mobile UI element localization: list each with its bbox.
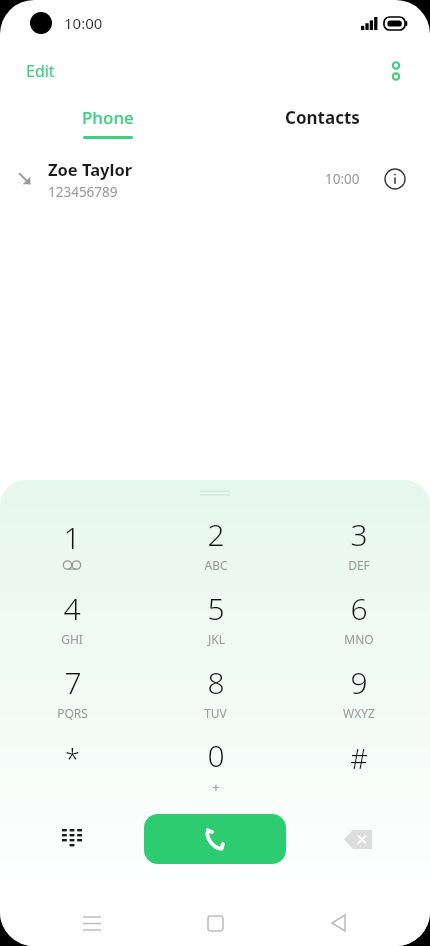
button[interactable]: 2 bbox=[144, 506, 287, 580]
button[interactable]: 1 bbox=[0, 506, 144, 580]
staticText: 8 bbox=[207, 662, 225, 703]
staticText: 2 bbox=[207, 514, 225, 555]
button[interactable]: 5 bbox=[144, 580, 287, 654]
staticText: 5 bbox=[207, 588, 225, 629]
button[interactable]: 7 bbox=[0, 654, 144, 728]
button[interactable]: Edit bbox=[14, 54, 67, 88]
button[interactable]: # bbox=[287, 728, 430, 802]
button[interactable]: Phone bbox=[0, 96, 215, 148]
staticText: 6 bbox=[350, 588, 368, 629]
button[interactable]: 9 bbox=[287, 654, 430, 728]
staticText: 4 bbox=[63, 588, 81, 629]
staticText: 10:00 bbox=[325, 170, 360, 188]
staticText: 9 bbox=[350, 662, 368, 703]
staticText: * bbox=[65, 740, 80, 777]
staticText: DEF bbox=[348, 557, 370, 573]
button[interactable]: Contacts bbox=[215, 96, 430, 148]
staticText: WXYZ bbox=[343, 705, 375, 721]
staticText: # bbox=[350, 740, 368, 777]
button[interactable]: 8 bbox=[144, 654, 287, 728]
button[interactable]: Zoe Taylor bbox=[0, 148, 430, 210]
button[interactable]: Home bbox=[191, 900, 239, 946]
button[interactable]: 4 bbox=[0, 580, 144, 654]
button[interactable]: More options bbox=[376, 51, 416, 91]
button[interactable]: Hide keypad bbox=[0, 808, 144, 870]
staticText: JKL bbox=[208, 631, 225, 647]
button[interactable]: * bbox=[0, 728, 144, 802]
staticText: ABC bbox=[204, 557, 228, 573]
staticText: TUV bbox=[204, 705, 227, 721]
staticText: Contacts bbox=[285, 106, 360, 129]
staticText: MNO bbox=[344, 631, 374, 647]
button[interactable]: Recents bbox=[68, 900, 116, 946]
staticText: GHI bbox=[61, 631, 83, 647]
button[interactable]: Back bbox=[314, 900, 362, 946]
staticText: 10:00 bbox=[64, 13, 103, 33]
staticText: PQRS bbox=[57, 705, 88, 721]
staticText: Phone bbox=[82, 106, 134, 129]
staticText: 1 bbox=[63, 517, 81, 558]
button[interactable]: Call bbox=[144, 814, 286, 864]
button[interactable]: Call details bbox=[378, 162, 412, 196]
staticText: Edit bbox=[26, 60, 55, 82]
button[interactable]: Delete bbox=[286, 808, 430, 870]
staticText: 7 bbox=[64, 662, 82, 703]
staticText: 123456789 bbox=[48, 183, 118, 201]
staticText: 0 bbox=[207, 735, 225, 776]
button[interactable]: 6 bbox=[287, 580, 430, 654]
staticText: 3 bbox=[350, 514, 368, 555]
button[interactable]: 3 bbox=[287, 506, 430, 580]
button[interactable]: 0 bbox=[144, 728, 287, 802]
staticText: + bbox=[212, 778, 220, 796]
staticText: Zoe Taylor bbox=[48, 158, 133, 180]
